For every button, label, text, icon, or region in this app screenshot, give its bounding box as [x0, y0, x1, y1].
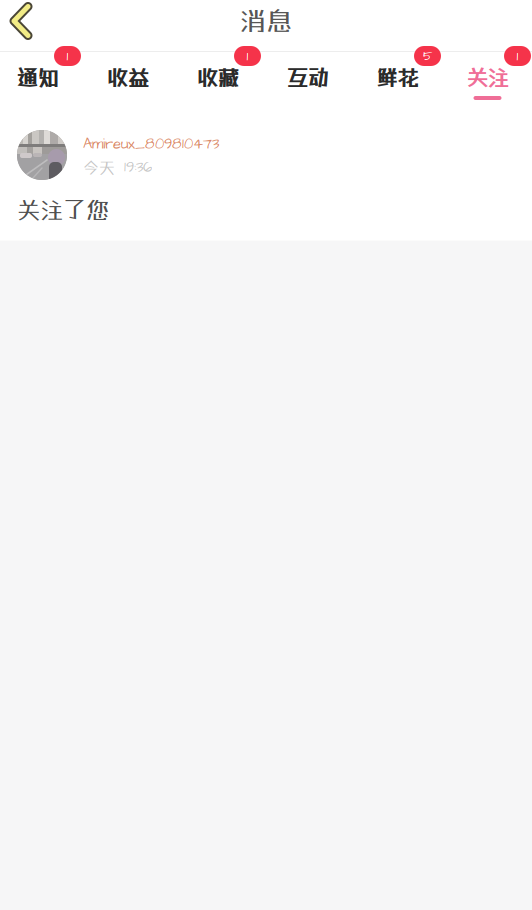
button[interactable]: 收藏 — [172, 52, 262, 100]
staticText: 互动 — [286, 65, 328, 90]
staticText: 今天 — [83, 158, 115, 177]
staticText: 19:36 — [124, 157, 152, 178]
staticText: Amireux_809810473 — [83, 134, 219, 154]
button[interactable]: Amireux_809810473 — [0, 100, 532, 240]
button[interactable]: 鲜花 — [352, 52, 442, 100]
staticText: 关注 — [466, 65, 508, 90]
button[interactable]: 互动 — [262, 52, 352, 100]
button[interactable]: 通知 — [0, 52, 82, 100]
staticText: 收藏 — [196, 65, 238, 90]
staticText: 消息 — [239, 5, 293, 36]
staticText: 1 — [246, 47, 248, 65]
button[interactable]: 关注 — [442, 52, 532, 100]
button[interactable]: Back — [0, 0, 50, 50]
staticText: 1 — [66, 47, 68, 65]
staticText: 关注了您 — [17, 196, 109, 223]
staticText: 鲜花 — [376, 65, 418, 90]
staticText: 5 — [423, 47, 432, 65]
staticText: 1 — [516, 47, 518, 65]
staticText: 收益 — [106, 65, 148, 90]
staticText: 通知 — [16, 65, 58, 90]
button[interactable]: 收益 — [82, 52, 172, 100]
